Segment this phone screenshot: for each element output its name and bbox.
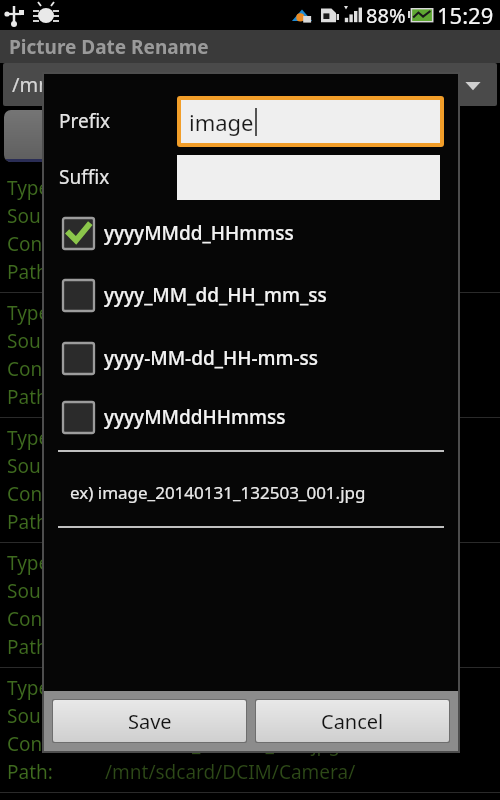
staticText: Convert: xyxy=(7,481,83,507)
button[interactable]: image xyxy=(181,100,440,143)
staticText: 88% xyxy=(366,2,406,29)
staticText: Prefix xyxy=(59,108,111,134)
button[interactable]: yyyyMMdd_HHmmss xyxy=(44,217,458,249)
staticText: ex) image_20140131_132503_001.jpg xyxy=(70,481,366,504)
staticText: Source: xyxy=(7,703,74,729)
staticText: Path: xyxy=(7,759,53,785)
staticText: Type: xyxy=(7,675,55,701)
staticText: 20130914_132504_001.jpg xyxy=(105,481,340,507)
staticText: Image xyxy=(105,675,163,701)
staticText: Type: xyxy=(7,175,55,201)
staticText: Type: xyxy=(7,300,55,326)
staticText: Source: xyxy=(7,453,74,479)
staticText: /mnt/sdcard/DCIM/Camera/ xyxy=(12,71,276,98)
staticText: Path: xyxy=(7,509,53,535)
button[interactable]: yyyyMMddHHmmss xyxy=(44,401,458,433)
button[interactable]: Save xyxy=(53,700,246,742)
button[interactable]: yyyy_MM_dd_HH_mm_ss xyxy=(44,279,458,311)
button[interactable]: Browse folder xyxy=(4,110,129,162)
staticText: yyyy-MM-dd_HH-mm-ss xyxy=(104,345,319,371)
staticText: Image xyxy=(105,300,163,326)
staticText: Convert: xyxy=(7,231,83,257)
staticText: Convert: xyxy=(7,731,83,757)
staticText: Convert: xyxy=(7,356,83,382)
staticText: Source: xyxy=(7,203,74,229)
staticText: 20130914_132452_001.jpg xyxy=(105,356,340,382)
button[interactable]: yyyy-MM-dd_HH-mm-ss xyxy=(44,342,458,374)
staticText: /mnt/sdcard/DCIM/Camera/ xyxy=(105,759,356,785)
button[interactable]: Cancel xyxy=(256,700,449,742)
staticText: Path: xyxy=(7,634,53,660)
staticText: Save xyxy=(128,708,172,735)
staticText: Cancel xyxy=(321,708,384,735)
button[interactable]: /mnt/sdcard/DCIM/Camera/ xyxy=(3,63,497,106)
staticText: image xyxy=(189,107,254,137)
staticText: IMG_20130914_133634.jpg xyxy=(105,703,345,729)
staticText: Type: xyxy=(7,550,55,576)
staticText: Source: xyxy=(7,328,74,354)
staticText: IMG_20021208_210000.jpg xyxy=(105,203,345,229)
staticText: Source: xyxy=(7,578,74,604)
staticText: Picture Date Rename xyxy=(9,34,209,60)
staticText: Convert: xyxy=(7,606,83,632)
staticText: Image xyxy=(105,175,163,201)
staticText: IMG_20130914_132453.jpg xyxy=(105,328,345,354)
staticText: Suffix xyxy=(59,164,110,190)
staticText: /mnt/sdcard/DCIM/Camera/ xyxy=(105,509,356,535)
staticText: 20021208_210000_001.jpg xyxy=(105,231,340,257)
staticText: Path: xyxy=(7,259,53,285)
staticText: yyyy_MM_dd_HH_mm_ss xyxy=(104,282,327,308)
staticText: Type: xyxy=(7,425,55,451)
staticText: 15:29 xyxy=(437,0,494,30)
staticText: Image xyxy=(105,425,163,451)
staticText: /mnt/sdcard/DCIM/Camera/ xyxy=(105,384,356,410)
staticText: yyyyMMddHHmmss xyxy=(104,404,286,430)
staticText: Path: xyxy=(7,384,53,410)
staticText: 20130914_133633_001.jpg xyxy=(105,731,340,757)
staticText: yyyyMMdd_HHmmss xyxy=(104,220,294,246)
